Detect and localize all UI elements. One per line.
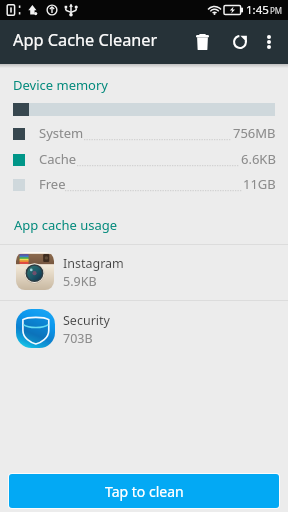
staticText: 703B	[63, 330, 93, 347]
staticText: Cache	[39, 150, 77, 168]
staticText: App cache usage	[14, 216, 118, 234]
staticText: Security	[63, 312, 110, 329]
staticText: 5.9KB	[63, 273, 97, 290]
staticText: Free	[39, 175, 66, 193]
button[interactable]: More options	[256, 29, 282, 55]
staticText: App Cache Cleaner	[13, 29, 158, 51]
button[interactable]: System	[0, 122, 288, 147]
staticText: Tap to clean	[105, 482, 184, 501]
button[interactable]: Free	[0, 173, 288, 198]
button[interactable]: Refresh	[223, 25, 257, 59]
staticText: 11GB	[243, 175, 276, 193]
staticText: Instagram	[63, 255, 124, 272]
button[interactable]: Delete	[185, 25, 219, 59]
staticText: 756MB	[233, 124, 276, 142]
staticText: 1:45	[246, 2, 269, 18]
staticText: PM	[270, 5, 283, 16]
button[interactable]: Instagram	[0, 244, 288, 300]
button[interactable]: Tap to clean	[9, 474, 279, 508]
button[interactable]: Cache	[0, 148, 288, 173]
staticText: System	[39, 124, 84, 142]
staticText: Device memory	[13, 76, 108, 94]
button[interactable]: Security	[0, 301, 288, 357]
staticText: 6.6KB	[241, 150, 276, 168]
